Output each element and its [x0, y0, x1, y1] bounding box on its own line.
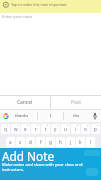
staticText: j — [70, 139, 72, 145]
staticText: Post — [71, 99, 82, 106]
button[interactable]: r — [31, 124, 40, 134]
button[interactable]: Add Note — [0, 148, 101, 180]
button[interactable]: Cancel — [0, 96, 50, 109]
button[interactable] — [91, 112, 99, 120]
staticText: 4 — [37, 124, 39, 127]
button[interactable]: h — [56, 137, 65, 147]
staticText: k — [79, 139, 82, 145]
staticText: a — [9, 139, 12, 145]
button[interactable]: j — [66, 137, 75, 147]
staticText: the — [73, 113, 80, 119]
staticText: i — [75, 126, 77, 132]
button[interactable]: Post — [51, 96, 101, 109]
button[interactable]: u — [61, 124, 70, 134]
button[interactable]: I — [38, 110, 63, 122]
staticText: s — [19, 139, 22, 145]
button[interactable]: f — [36, 137, 45, 147]
staticText: 2 — [17, 124, 19, 127]
button[interactable]: y — [51, 124, 60, 134]
staticText: Enter your note — [2, 14, 32, 20]
button[interactable]: l — [86, 137, 95, 147]
button[interactable]: a — [6, 137, 15, 147]
staticText: e — [24, 126, 27, 132]
staticText: f — [40, 139, 42, 145]
staticText: Cancel — [17, 99, 33, 106]
button[interactable]: w — [11, 124, 20, 134]
staticText: I — [50, 113, 52, 119]
staticText: q — [4, 126, 7, 132]
staticText: p — [94, 126, 97, 132]
staticText: Make notes and share with your class and… — [2, 162, 83, 172]
staticText: 8 — [77, 124, 79, 127]
staticText: g — [49, 139, 52, 145]
staticText: w — [14, 126, 18, 132]
staticText: u — [64, 126, 67, 132]
button[interactable]: k — [76, 137, 85, 147]
staticText: 9 — [87, 124, 89, 127]
button[interactable]: d — [26, 137, 35, 147]
button[interactable]: t — [41, 124, 50, 134]
staticText: Add Note — [2, 148, 55, 164]
staticText: 6 — [57, 124, 59, 127]
staticText: 0 — [97, 124, 99, 127]
staticText: o — [84, 126, 87, 132]
button[interactable]: e — [21, 124, 30, 134]
staticText: r — [35, 126, 37, 132]
button[interactable]: s — [16, 137, 25, 147]
button[interactable]: i — [71, 124, 80, 134]
staticText: 1 — [7, 124, 9, 127]
staticText: h — [59, 139, 62, 145]
staticText: t — [45, 126, 47, 132]
button[interactable]: g — [46, 137, 55, 147]
staticText: d — [29, 139, 32, 145]
staticText: y — [54, 126, 57, 132]
staticText: l — [90, 139, 92, 145]
button[interactable]: thanks — [10, 110, 34, 122]
staticText: 5 — [47, 124, 49, 127]
staticText: Tap to make this note important — [11, 2, 67, 7]
button[interactable]: p — [91, 124, 100, 134]
button[interactable] — [3, 113, 9, 119]
button[interactable]: Tap to make this note important — [0, 0, 101, 13]
staticText: 3 — [27, 124, 29, 127]
staticText: thanks — [15, 113, 29, 119]
staticText: 7 — [67, 124, 69, 127]
button[interactable]: q — [1, 124, 10, 134]
button[interactable]: the — [64, 110, 88, 122]
button[interactable]: o — [81, 124, 90, 134]
